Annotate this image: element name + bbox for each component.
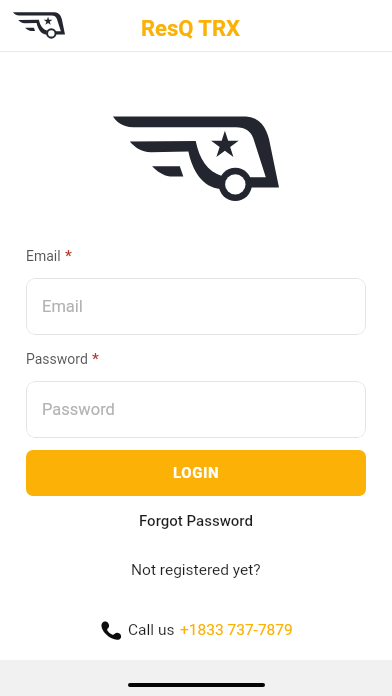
button[interactable]: ResQ TRX home [12, 10, 68, 42]
button[interactable]: Not registered yet? [123, 557, 269, 583]
staticText: +1833 737-7879 [180, 621, 293, 639]
button[interactable]: Email [26, 278, 366, 335]
staticText: Email [26, 248, 61, 264]
staticText: LOGIN [173, 464, 220, 482]
staticText: Email [42, 297, 83, 316]
staticText: Password [26, 351, 88, 367]
button[interactable]: LOGIN [26, 450, 366, 496]
staticText: * [92, 350, 99, 368]
button[interactable]: Forgot Password [131, 508, 261, 534]
button[interactable]: Password [26, 381, 366, 438]
staticText: Password [42, 400, 115, 419]
staticText: Forgot Password [139, 512, 253, 530]
staticText: * [65, 247, 72, 265]
staticText: Not registered yet? [131, 561, 261, 579]
staticText: Call us [128, 621, 175, 639]
button[interactable]: Call us [0, 620, 392, 640]
staticText: ResQ TRX [141, 16, 240, 42]
